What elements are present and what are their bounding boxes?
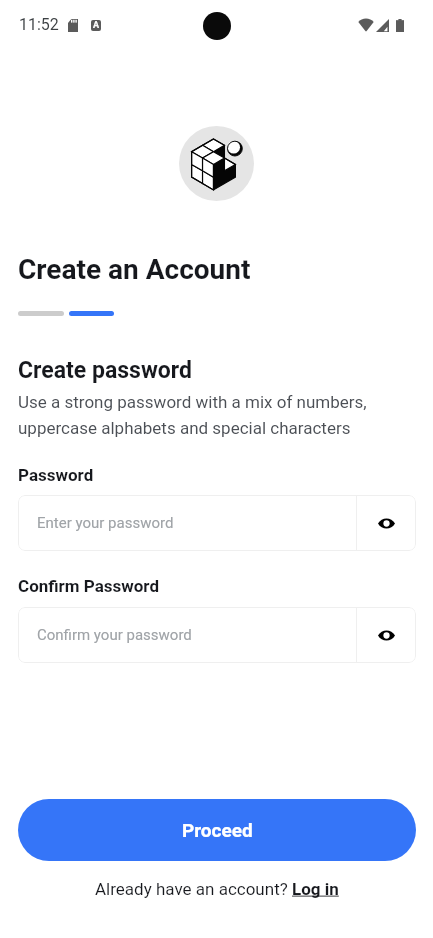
staticText: Password: [18, 465, 94, 485]
staticText: Confirm your password: [37, 626, 192, 644]
staticText: Confirm Password: [18, 576, 160, 596]
button[interactable]: Log in: [292, 879, 339, 899]
staticText: Create an Account: [18, 253, 251, 286]
staticText: 11:52: [19, 15, 59, 34]
staticText: A: [93, 20, 100, 31]
button[interactable]: Show password: [357, 495, 416, 551]
staticText: Create password: [18, 357, 192, 384]
staticText: Enter your password: [37, 514, 174, 532]
staticText: Use a strong password with a mix of numb…: [18, 392, 367, 438]
staticText: Already have an account?: [95, 879, 292, 899]
button[interactable]: Show password: [357, 607, 416, 663]
button[interactable]: Proceed: [18, 799, 416, 861]
staticText: Proceed: [182, 819, 253, 841]
staticText: Log in: [292, 879, 339, 899]
